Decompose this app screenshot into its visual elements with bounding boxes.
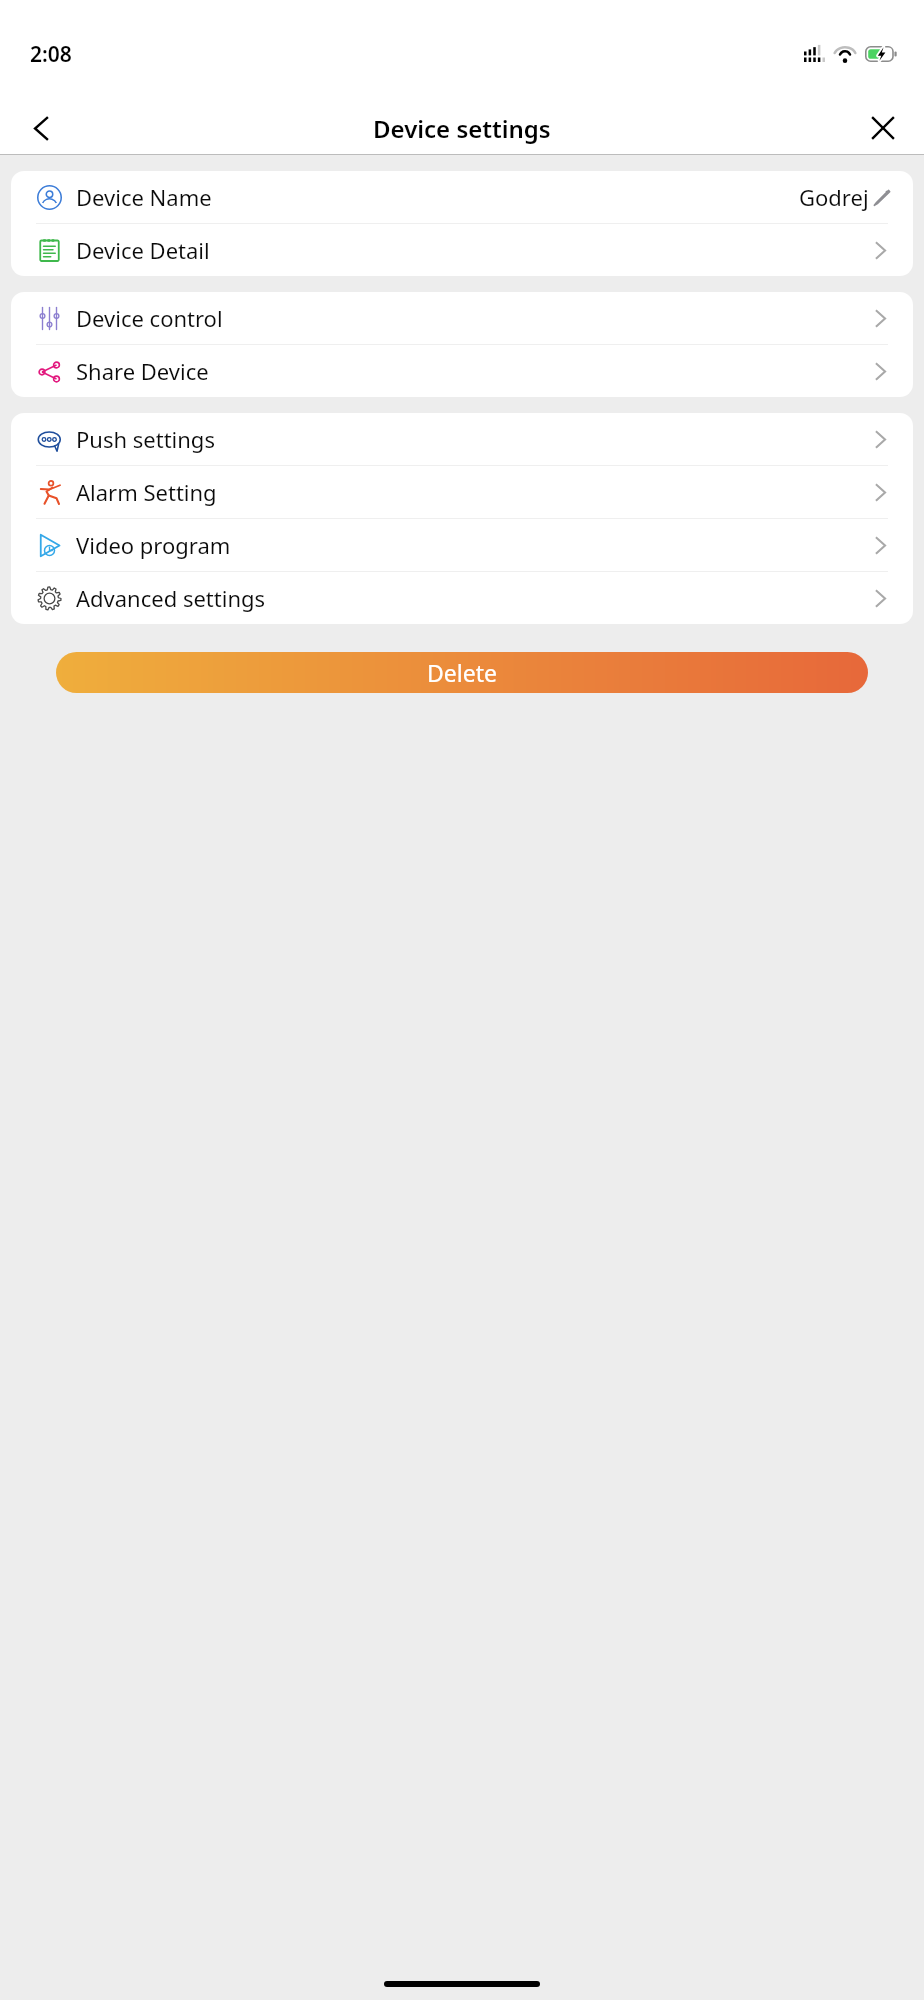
staticText: Push settings xyxy=(76,424,215,454)
staticText: Device control xyxy=(76,303,223,333)
button[interactable]: Alarm Setting xyxy=(11,466,913,518)
button[interactable]: Close xyxy=(856,102,910,154)
staticText: 2:08 xyxy=(30,40,72,69)
staticText: Godrej xyxy=(799,182,869,212)
staticText: Share Device xyxy=(76,356,209,386)
staticText: Delete xyxy=(427,657,497,688)
staticText: Device Detail xyxy=(76,235,210,265)
button[interactable]: Push settings xyxy=(11,413,913,465)
staticText: Advanced settings xyxy=(76,583,266,613)
staticText: Device settings xyxy=(373,112,551,145)
button[interactable]: Delete xyxy=(56,652,868,693)
button[interactable]: Device Detail xyxy=(11,224,913,276)
staticText: Video program xyxy=(76,530,231,560)
staticText: Alarm Setting xyxy=(76,477,217,507)
staticText: Device Name xyxy=(76,182,212,212)
button[interactable]: Back xyxy=(14,102,68,154)
button[interactable]: Share Device xyxy=(11,345,913,397)
button[interactable]: Device control xyxy=(11,292,913,344)
button[interactable]: Advanced settings xyxy=(11,572,913,624)
button[interactable]: Device Name xyxy=(11,171,913,223)
button[interactable]: Video program xyxy=(11,519,913,571)
